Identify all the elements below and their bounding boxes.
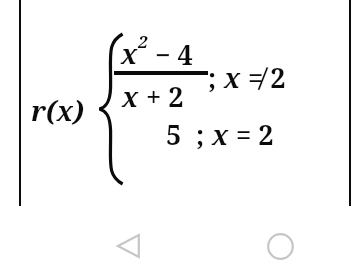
staticText: = 2 (229, 116, 274, 153)
staticText: x (212, 116, 229, 153)
button[interactable]: Home (256, 222, 304, 265)
staticText: x (224, 59, 241, 96)
staticText: r(x) (31, 92, 84, 129)
button[interactable]: Back (104, 222, 152, 265)
staticText: x (122, 78, 139, 115)
staticText: ; (182, 116, 212, 153)
staticText: + 2 (139, 78, 184, 115)
staticText: 2 (138, 30, 148, 53)
staticText: − 4 (148, 36, 193, 73)
staticText: ; (208, 59, 224, 96)
staticText: ≠ 2 (241, 59, 286, 96)
staticText: x (121, 35, 138, 72)
staticText: 5 (166, 116, 182, 153)
